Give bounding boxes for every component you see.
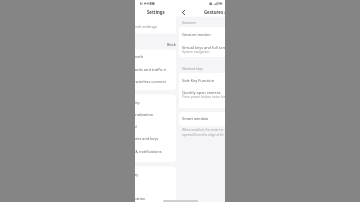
staticText: SIM cards and traffic manage xyxy=(135,67,166,72)
staticText: Virtual keys and full scre xyxy=(182,45,225,50)
staticText: Smart window xyxy=(182,116,209,121)
staticText: Gesture motion xyxy=(182,32,211,37)
staticText: Apps & notifications xyxy=(135,149,162,154)
staticText: Quickly open camera xyxy=(182,90,221,95)
staticText: Sound xyxy=(135,124,137,129)
staticText: opened from the edge of th xyxy=(182,133,224,137)
staticText: Application xyxy=(135,196,146,201)
button[interactable]: Gestures and keys xyxy=(135,133,168,146)
staticText: Battery xyxy=(135,172,139,177)
staticText: Settings xyxy=(147,9,165,15)
staticText: Gestures and xyxy=(204,9,225,15)
button[interactable]: Security xyxy=(135,96,168,109)
staticText: Search settings xyxy=(135,24,157,29)
staticText: When enabled, the smart w xyxy=(182,128,224,132)
staticText: Blocks xyxy=(167,42,176,46)
button[interactable]: Bluetooth xyxy=(135,50,168,63)
staticText: Shortcut keys xyxy=(182,66,203,70)
button[interactable]: Virtual keys and full screen gestures xyxy=(178,40,225,57)
staticText: Users xyxy=(135,184,136,189)
staticText: Gestures and keys xyxy=(135,136,159,141)
button[interactable]: Smart window xyxy=(178,112,225,126)
staticText: System navigation xyxy=(182,50,210,54)
staticText: Security xyxy=(135,100,140,105)
button[interactable]: Personalization xyxy=(135,108,168,121)
button[interactable]: Application xyxy=(135,191,168,202)
staticText: More wireless connection xyxy=(135,79,166,84)
button[interactable]: SIM cards and traffic management xyxy=(135,63,168,76)
staticText: Personalization xyxy=(135,112,154,117)
button[interactable]: Sound xyxy=(135,121,168,134)
staticText: Press power button twice for xyxy=(182,95,225,99)
staticText: Gestures xyxy=(182,20,196,24)
button[interactable]: More wireless connection xyxy=(135,75,168,88)
staticText: Bluetooth xyxy=(135,54,144,59)
staticText: Side Key Function xyxy=(182,78,215,83)
button[interactable]: Gesture motion xyxy=(178,27,225,40)
button[interactable]: Battery xyxy=(135,166,168,179)
button[interactable]: Quickly open camera xyxy=(178,87,225,108)
button[interactable]: Back xyxy=(179,8,187,16)
button[interactable]: Side Key Function xyxy=(178,73,225,87)
button[interactable]: Apps & notifications xyxy=(135,146,168,159)
button[interactable]: Search settings xyxy=(135,20,168,33)
